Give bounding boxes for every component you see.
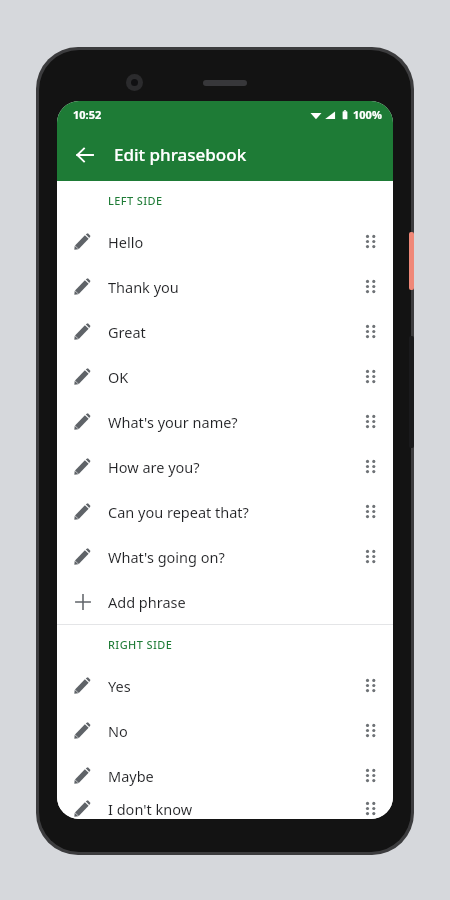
button[interactable]: Hello <box>57 219 393 264</box>
staticText: Great <box>108 322 348 342</box>
button[interactable]: I don't know <box>57 798 393 819</box>
staticText: Thank you <box>108 277 348 297</box>
staticText: Yes <box>108 676 348 696</box>
staticText: No <box>108 721 348 741</box>
staticText: How are you? <box>108 457 348 477</box>
button[interactable]: What's going on? <box>57 534 393 579</box>
staticText: OK <box>108 367 348 387</box>
button[interactable]: Can you repeat that? <box>57 489 393 534</box>
button[interactable]: Maybe <box>57 753 393 798</box>
staticText: Can you repeat that? <box>108 502 348 522</box>
button[interactable]: Great <box>57 309 393 354</box>
button[interactable]: What's your name? <box>57 399 393 444</box>
button[interactable]: Back <box>66 136 104 174</box>
staticText: Maybe <box>108 766 348 786</box>
button[interactable]: How are you? <box>57 444 393 489</box>
staticText: What's going on? <box>108 547 348 567</box>
staticText: Hello <box>108 232 348 252</box>
staticText: I don't know <box>108 799 348 819</box>
button[interactable]: Add phrase <box>57 579 393 624</box>
staticText: 100% <box>353 107 382 122</box>
staticText: 10:52 <box>73 107 102 122</box>
button[interactable]: OK <box>57 354 393 399</box>
staticText: What's your name? <box>108 412 348 432</box>
button[interactable]: No <box>57 708 393 753</box>
staticText: Add phrase <box>108 592 348 612</box>
button[interactable]: Yes <box>57 663 393 708</box>
staticText: RIGHT SIDE <box>108 637 173 652</box>
staticText: LEFT SIDE <box>108 193 163 208</box>
button[interactable]: Thank you <box>57 264 393 309</box>
staticText: Edit phrasebook <box>114 143 247 166</box>
